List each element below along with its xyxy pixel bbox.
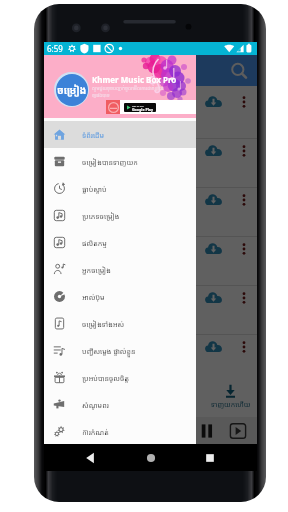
button[interactable]: Recents [198, 446, 222, 470]
staticText: ទំព័រដើម [60, 400, 82, 410]
staticText: ចម្រៀង [57, 83, 87, 97]
button[interactable]: Home [139, 446, 163, 470]
button[interactable]: អ្នកចម្រៀង [44, 256, 196, 283]
button[interactable]: Download [44, 139, 257, 187]
button[interactable]: More options [238, 243, 250, 255]
staticText: ការកំណត់ [82, 427, 109, 437]
button[interactable]: Search [229, 61, 249, 81]
button[interactable]: More options [238, 96, 250, 108]
button[interactable]: សំណូមពរ [151, 376, 204, 417]
staticText: ផលិតកម្ម [82, 238, 107, 248]
button[interactable]: More options [238, 194, 250, 206]
button[interactable]: ចម្រៀងទាំងអស់ [44, 310, 196, 337]
button[interactable]: Next [228, 421, 248, 441]
button[interactable]: ការកំណត់ [44, 418, 196, 445]
button[interactable]: Download [44, 90, 257, 138]
staticText: ចម្រៀងបានទាញយក [82, 157, 138, 167]
button[interactable]: Download [203, 190, 224, 211]
button[interactable]: Download [44, 188, 257, 236]
button[interactable]: Download [203, 337, 224, 358]
button[interactable]: បញ្ជីសម្លេង ផ្ទាល់ខ្លួន [44, 337, 196, 364]
button[interactable]: More options [238, 292, 250, 304]
button[interactable]: ប្រអប់បានចូលចិត្ត [44, 364, 196, 391]
staticText: GET IT ON [132, 104, 144, 107]
staticText: Google Play [132, 107, 154, 112]
button[interactable]: ទំព័រដើម [44, 376, 98, 417]
staticText: សូមជួយចុចបញ្ជាក់ចូលមើលការដាក់ផ្កាយ [92, 85, 164, 92]
button[interactable]: Download [203, 239, 224, 260]
staticText: ទាញយកហើយ [211, 400, 251, 410]
staticText: ទំព័រដើម [82, 130, 105, 140]
staticText: បញ្ជីសម្លេង ផ្ទាល់ខ្លួន [82, 346, 136, 356]
staticText: អ្នកចម្រៀង [82, 265, 111, 275]
button[interactable]: សំណូមពរ [44, 391, 196, 418]
button[interactable]: ទាញយកហើយ [204, 376, 257, 417]
button[interactable]: More options [238, 145, 250, 157]
staticText: ធ្លាប់ស្តាប់ [82, 184, 107, 194]
staticText: ប្រភេទចម្រៀង [82, 211, 120, 221]
staticText: អាល់ប៊ុម [82, 292, 105, 302]
button[interactable]: Download [203, 92, 224, 113]
button[interactable]: ទំព័រដើម [44, 121, 196, 148]
button[interactable]: Download [44, 237, 257, 285]
button[interactable]: ផលិតកម្ម [44, 229, 196, 256]
staticText: ចម្រៀងទាំងអស់ [82, 319, 125, 329]
button[interactable]: Back [79, 446, 103, 470]
staticText: ប្រអប់បានចូលចិត្ត [82, 373, 130, 383]
staticText: Khmer Music Box Pro [92, 74, 177, 85]
staticText: សំណូមពរ [82, 400, 109, 410]
staticText: ឲ្យផងបាទ [92, 92, 110, 99]
button[interactable]: Pause [196, 420, 218, 442]
button[interactable]: Download [44, 286, 257, 334]
staticText: 6:59 [47, 43, 63, 54]
button[interactable]: More options [238, 341, 250, 353]
button[interactable]: Download [203, 288, 224, 309]
button[interactable]: ស្វែងរក [98, 376, 151, 417]
button[interactable]: ធ្លាប់ស្តាប់ [44, 175, 196, 202]
button[interactable]: GET IT ON [106, 100, 196, 114]
button[interactable]: Download [203, 141, 224, 162]
button[interactable]: Download [44, 335, 257, 376]
button[interactable]: ប្រភេទចម្រៀង [44, 202, 196, 229]
button[interactable]: អាល់ប៊ុម [44, 283, 196, 310]
button[interactable]: ចម្រៀងបានទាញយក [44, 148, 196, 175]
